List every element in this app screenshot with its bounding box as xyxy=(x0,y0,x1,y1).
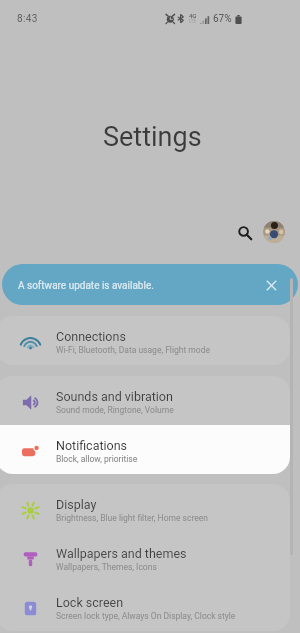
button[interactable]: Wallpapers and themes xyxy=(0,533,290,582)
staticText: 67% xyxy=(213,13,232,25)
staticText: Wi-Fi, Bluetooth, Data usage, Flight mod… xyxy=(56,345,210,355)
staticText: Wallpapers, Themes, Icons xyxy=(56,562,157,572)
staticText: Display xyxy=(56,497,97,512)
staticText: Block, allow, prioritise xyxy=(56,454,138,464)
staticText: Wallpapers and themes xyxy=(56,546,187,561)
staticText: 4G xyxy=(189,12,197,19)
button[interactable]: Display xyxy=(0,484,290,533)
button[interactable]: Connections xyxy=(0,316,290,365)
button[interactable]: Search xyxy=(231,219,258,246)
staticText: Lock screen xyxy=(56,595,124,610)
staticText: Sound mode, Ringtone, Volume xyxy=(56,405,174,415)
staticText: Screen lock type, Always On Display, Clo… xyxy=(56,611,236,621)
staticText: 8:43 xyxy=(17,13,38,25)
button[interactable]: A software update is available. xyxy=(2,264,298,305)
staticText: A software update is available. xyxy=(18,280,154,292)
staticText: Settings xyxy=(103,121,202,153)
button[interactable]: Dismiss xyxy=(262,276,280,294)
button[interactable]: Profile xyxy=(263,221,285,243)
staticText: Connections xyxy=(56,329,126,344)
staticText: LTE xyxy=(189,19,197,24)
staticText: Brightness, Blue light filter, Home scre… xyxy=(56,513,208,523)
staticText: Sounds and vibration xyxy=(56,389,173,404)
button[interactable]: Notifications xyxy=(0,425,290,474)
button[interactable]: Sounds and vibration xyxy=(0,376,290,425)
staticText: Notifications xyxy=(56,438,128,453)
button[interactable]: Lock screen xyxy=(0,582,290,631)
